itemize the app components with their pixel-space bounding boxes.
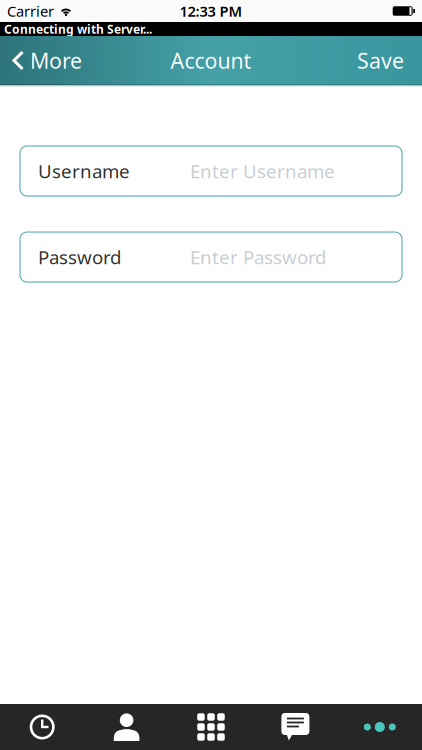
- button[interactable]: More: [338, 722, 422, 732]
- button[interactable]: Messages: [253, 713, 338, 741]
- button[interactable]: Password: [20, 232, 402, 282]
- staticText: Carrier: [7, 1, 54, 21]
- staticText: Username: [38, 159, 130, 183]
- staticText: More: [30, 46, 82, 75]
- staticText: Password: [38, 245, 121, 269]
- button[interactable]: Save: [357, 46, 422, 75]
- staticText: Enter Username: [190, 159, 335, 183]
- staticText: Enter Password: [190, 245, 326, 269]
- button[interactable]: Account: [84, 713, 169, 741]
- button[interactable]: History: [0, 714, 84, 740]
- button[interactable]: Back: [0, 46, 82, 75]
- staticText: Save: [357, 46, 404, 75]
- staticText: Connecting with Server...: [4, 21, 152, 37]
- button[interactable]: Username: [20, 146, 402, 196]
- staticText: Account: [170, 46, 251, 75]
- button[interactable]: Apps: [169, 713, 253, 741]
- staticText: 12:33 PM: [179, 1, 242, 21]
